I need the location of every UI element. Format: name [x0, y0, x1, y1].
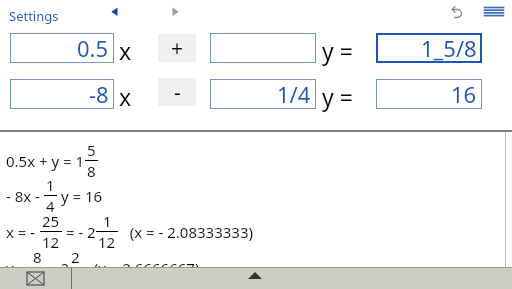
- button[interactable]: -: [158, 78, 196, 106]
- staticText: x: [119, 81, 132, 112]
- staticText: +: [171, 34, 184, 62]
- staticText: -: [174, 78, 181, 106]
- staticText: = - 2: [62, 222, 96, 242]
- staticText: Settings: [9, 7, 59, 25]
- staticText: 12: [42, 232, 60, 252]
- staticText: 12: [98, 232, 116, 252]
- button[interactable]: [166, 3, 184, 20]
- staticText: x = -: [6, 222, 40, 242]
- staticText: 0.5x + y = 1: [6, 151, 85, 171]
- staticText: 2: [71, 247, 80, 267]
- staticText: 25: [42, 211, 60, 231]
- staticText: 1: [46, 175, 55, 195]
- staticText: = 2: [44, 258, 69, 278]
- button[interactable]: [106, 3, 124, 20]
- staticText: - 8x -: [6, 186, 44, 206]
- button[interactable]: +: [158, 34, 196, 62]
- button[interactable]: [449, 2, 466, 20]
- button[interactable]: -8: [10, 79, 114, 109]
- staticText: 8: [33, 247, 42, 267]
- button[interactable]: 1_5/8: [376, 33, 482, 63]
- button[interactable]: [240, 269, 270, 285]
- staticText: 1/4: [277, 79, 311, 109]
- staticText: 3: [71, 268, 80, 288]
- staticText: 16: [451, 79, 477, 109]
- staticText: 4: [46, 196, 55, 216]
- button[interactable]: [24, 271, 47, 286]
- button[interactable]: [482, 5, 506, 19]
- button[interactable]: 16: [376, 79, 482, 109]
- staticText: 5: [87, 140, 96, 160]
- staticText: (y = 2.6666667): [82, 258, 200, 278]
- staticText: x: [119, 35, 132, 66]
- staticText: 0.5: [77, 33, 109, 63]
- staticText: 1: [103, 211, 112, 231]
- button[interactable]: 1/4: [210, 79, 316, 109]
- button[interactable]: [210, 33, 316, 63]
- button[interactable]: Settings: [6, 4, 62, 28]
- staticText: 1_5/8: [421, 33, 477, 63]
- staticText: y = 16: [57, 186, 103, 206]
- staticText: y =: [6, 258, 31, 278]
- staticText: (x = - 2.08333333): [118, 222, 253, 242]
- staticText: 3: [33, 268, 42, 288]
- staticText: y =: [322, 35, 353, 66]
- staticText: y =: [322, 81, 353, 112]
- button[interactable]: 0.5: [10, 33, 114, 63]
- staticText: 8: [87, 161, 96, 181]
- staticText: -8: [89, 79, 109, 109]
